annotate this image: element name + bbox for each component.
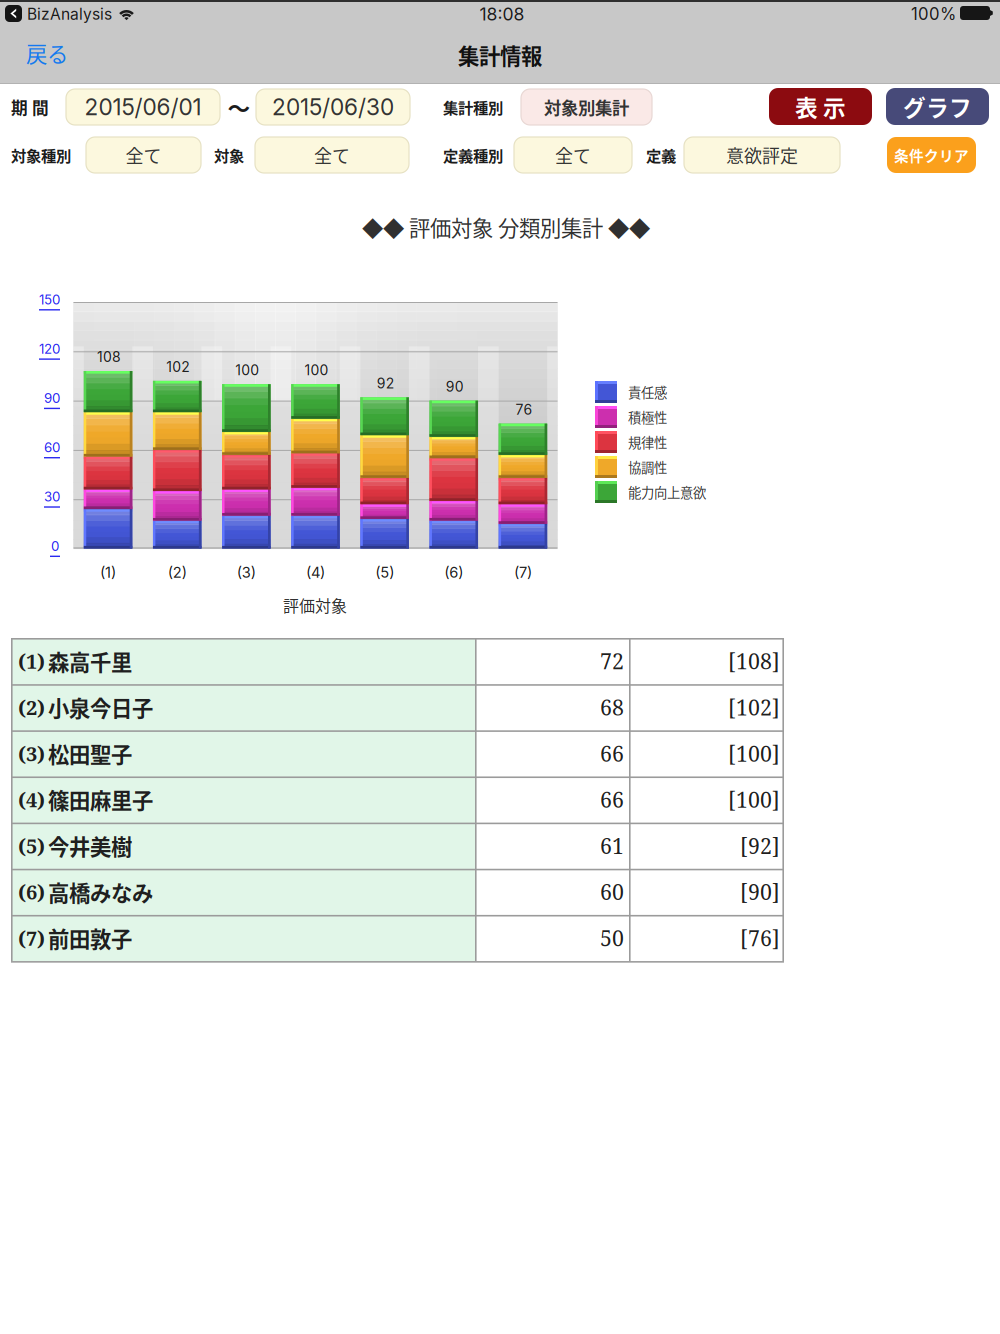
staticText: 対象別集計 (544, 94, 629, 120)
button[interactable]: 表 示 (769, 88, 872, 125)
button[interactable]: 2015/06/01 (66, 89, 220, 125)
staticText: 全て (555, 142, 591, 168)
button[interactable]: 60 (44, 439, 60, 458)
staticText: 50 (600, 923, 624, 952)
staticText: (4) (18, 786, 45, 813)
staticText: [108] (728, 646, 780, 676)
staticText: 規律性 (628, 432, 667, 452)
button[interactable]: 対象別集計 (521, 89, 652, 125)
staticText: 30 (44, 489, 60, 505)
staticText: 60 (600, 877, 624, 906)
staticText: 前田敦子 (48, 922, 132, 953)
button[interactable]: 2015/06/30 (256, 89, 410, 125)
staticText: 今井美樹 (48, 830, 132, 861)
staticText: (7) (18, 924, 45, 952)
staticText: (1) (18, 647, 45, 675)
staticText: 102 (166, 358, 190, 375)
staticText: 協調性 (628, 457, 667, 477)
button[interactable]: グラフ (886, 88, 989, 125)
staticText: 積極性 (628, 407, 667, 427)
staticText: 2015/06/01 (84, 93, 201, 121)
staticText: 66 (600, 739, 624, 768)
button[interactable]: 120 (39, 341, 60, 360)
button[interactable]: 意欲評定 (684, 137, 840, 173)
staticText: (6) (444, 564, 463, 581)
staticText: (5) (18, 832, 45, 859)
staticText: 2015/06/30 (272, 93, 394, 121)
staticText: 評価対象 (283, 593, 347, 617)
button[interactable]: 全て (86, 137, 201, 173)
staticText: 76 (515, 401, 532, 418)
staticText: 松田聖子 (48, 738, 132, 769)
staticText: 定義種別 (443, 144, 503, 166)
staticText: 篠田麻里子 (48, 784, 153, 815)
staticText: グラフ (903, 90, 972, 123)
staticText: [76] (740, 923, 780, 952)
staticText: 戻る (26, 38, 68, 68)
staticText: [92] (740, 831, 780, 860)
button[interactable]: 0 (50, 538, 60, 557)
button[interactable]: 90 (44, 390, 60, 409)
staticText: (3) (237, 564, 256, 581)
button[interactable]: 戻る (12, 32, 104, 74)
staticText: 全て (125, 142, 161, 168)
staticText: 100% (911, 4, 956, 24)
staticText: 高橋みなみ (48, 876, 153, 907)
staticText: 全て (314, 142, 350, 168)
staticText: 92 (377, 375, 395, 392)
staticText: 0 (51, 538, 59, 554)
staticText: 150 (39, 291, 60, 308)
staticText: 責任感 (628, 382, 667, 402)
staticText: 108 (97, 349, 121, 365)
staticText: [90] (740, 877, 780, 906)
staticText: [100] (728, 785, 780, 814)
staticText: 意欲評定 (726, 142, 798, 168)
staticText: 68 (600, 693, 624, 722)
staticText: 120 (39, 341, 60, 357)
staticText: 61 (600, 831, 624, 860)
staticText: 定義 (646, 144, 676, 166)
staticText: 集計種別 (443, 96, 503, 118)
button[interactable]: 全て (514, 137, 632, 173)
staticText: 条件クリア (894, 144, 969, 166)
staticText: 対象種別 (11, 144, 71, 166)
staticText: BizAnalysis (27, 5, 112, 23)
staticText: (4) (306, 564, 325, 581)
staticText: 期 間 (11, 95, 49, 119)
staticText: 表 示 (795, 90, 846, 123)
button[interactable]: 全て (255, 137, 409, 173)
staticText: (5) (375, 564, 394, 581)
staticText: 集計情報 (458, 40, 542, 70)
button[interactable]: 30 (44, 489, 60, 508)
staticText: 60 (44, 439, 60, 455)
staticText: 対象 (214, 144, 244, 166)
staticText: 能力向上意欲 (628, 482, 706, 502)
staticText: (6) (18, 878, 45, 905)
staticText: 18:08 (479, 3, 524, 25)
staticText: (3) (18, 740, 45, 767)
staticText: 66 (600, 785, 624, 814)
staticText: 100 (235, 362, 259, 379)
button[interactable]: 150 (39, 291, 60, 310)
staticText: ◆◆ 評価対象 分類別集計 ◆◆ (362, 212, 650, 242)
staticText: 小泉今日子 (48, 692, 153, 723)
staticText: 100 (304, 362, 328, 379)
staticText: 72 (600, 646, 624, 676)
staticText: [102] (728, 693, 780, 722)
staticText: 〜 (227, 91, 250, 123)
staticText: 90 (44, 390, 60, 406)
staticText: (2) (168, 564, 187, 581)
staticText: (2) (18, 694, 45, 721)
staticText: 90 (446, 378, 464, 395)
button[interactable]: 条件クリア (887, 137, 976, 173)
staticText: (7) (514, 564, 532, 581)
staticText: (1) (100, 564, 116, 581)
staticText: [100] (728, 739, 780, 768)
staticText: 森高千里 (48, 646, 132, 676)
button[interactable]: Back to previous app (5, 5, 22, 22)
